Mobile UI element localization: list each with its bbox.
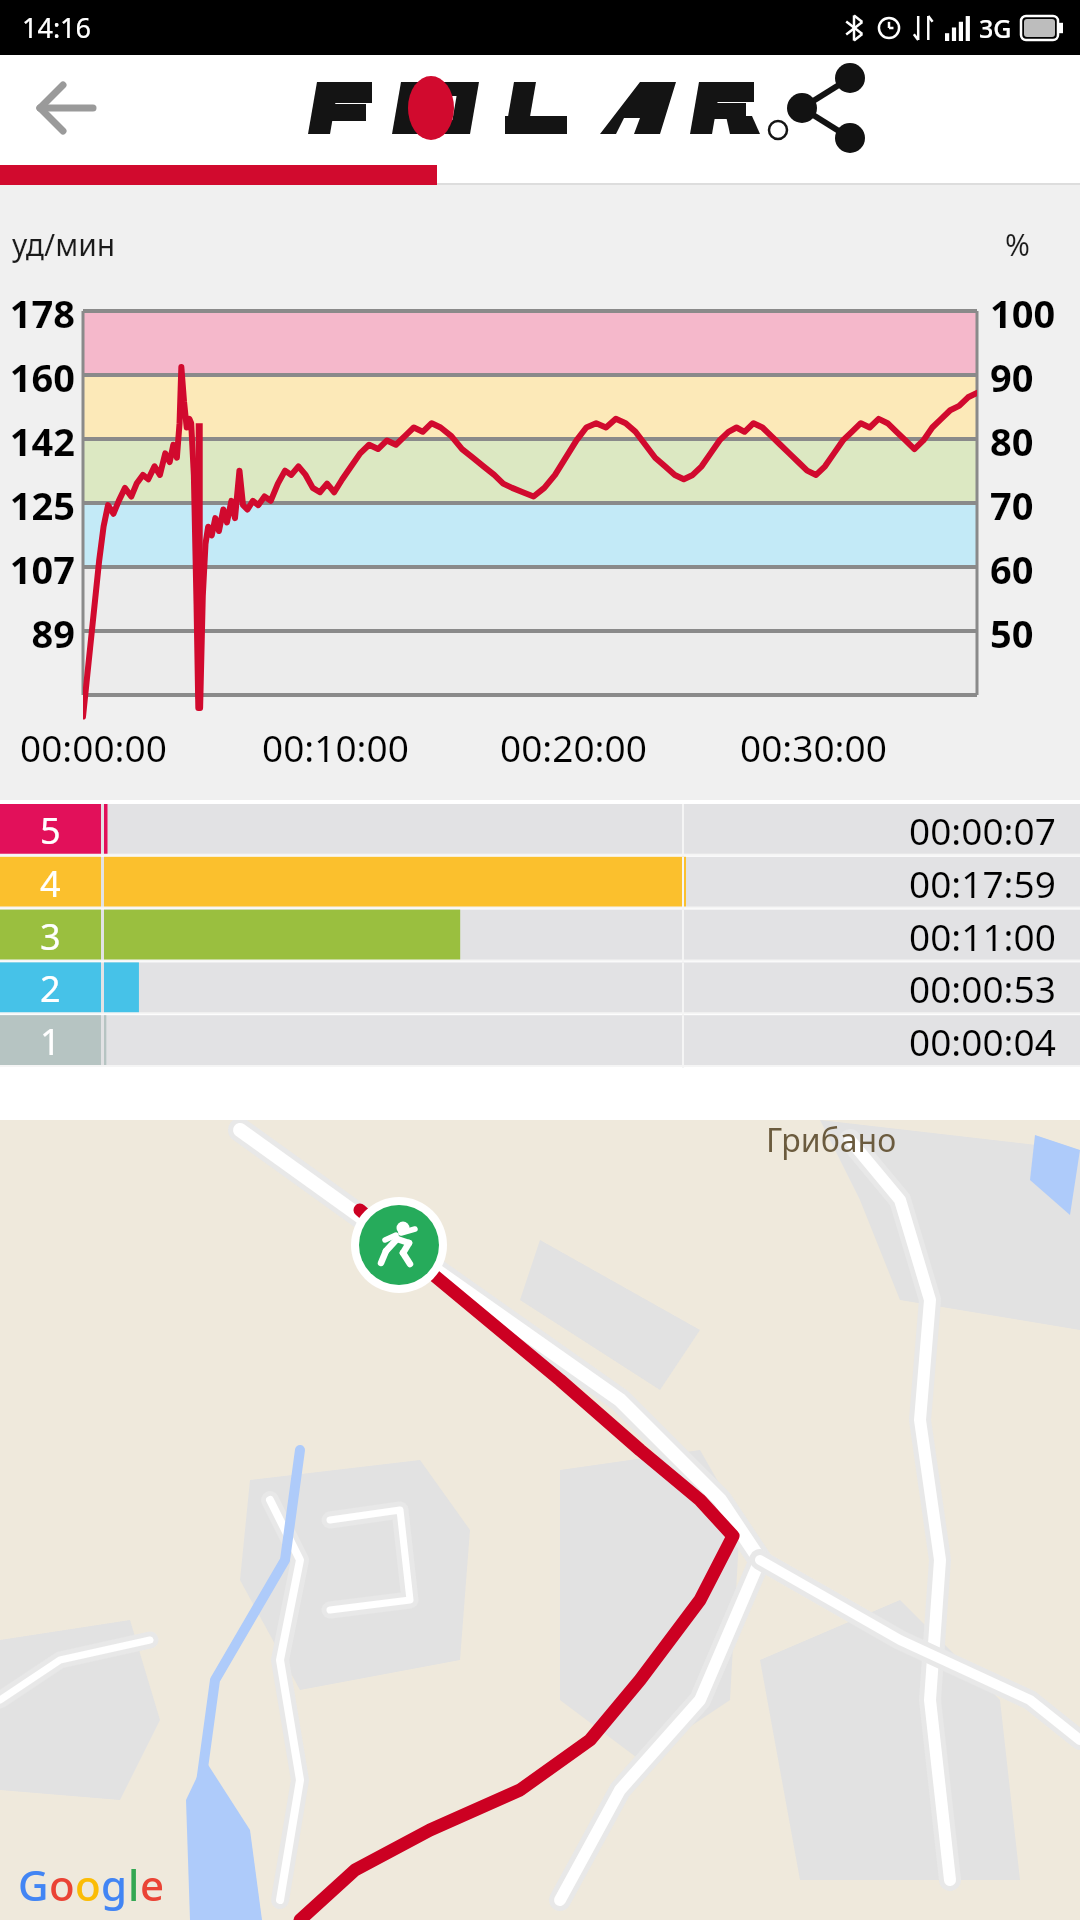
staticText: 00:10:00 [262, 722, 409, 772]
staticText: 5 [40, 806, 61, 855]
staticText: 125 [0, 479, 75, 531]
button[interactable]: 2 [0, 962, 1080, 1014]
staticText: 14:16 [22, 9, 92, 46]
staticText: g [101, 1856, 128, 1913]
staticText: 00:00:00 [20, 722, 167, 772]
staticText: 00:30:00 [740, 722, 887, 772]
staticText: 90 [990, 351, 1034, 403]
staticText: 100 [990, 287, 1056, 339]
staticText: 70 [990, 479, 1034, 531]
staticText: 1 [40, 1017, 61, 1066]
button[interactable]: Back [20, 66, 110, 150]
staticText: 178 [0, 287, 75, 339]
staticText: уд/мин [12, 224, 116, 265]
staticText: Грибано [766, 1118, 897, 1162]
staticText: 00:11:00 [909, 911, 1056, 961]
staticText: 3 [40, 912, 61, 961]
staticText: 00:00:04 [909, 1016, 1056, 1066]
staticText: 00:20:00 [500, 722, 647, 772]
staticText: 3G [979, 11, 1012, 45]
button[interactable]: 4 [0, 857, 1080, 909]
staticText: 60 [990, 543, 1034, 595]
staticText: o [49, 1856, 75, 1913]
staticText: 00:00:53 [909, 963, 1056, 1013]
staticText: o [75, 1856, 101, 1913]
button[interactable]: Share [780, 66, 876, 150]
button[interactable]: Route map [0, 1120, 1080, 1920]
staticText: e [140, 1856, 165, 1913]
staticText: G [18, 1856, 49, 1913]
staticText: 2 [40, 964, 61, 1013]
staticText: 160 [0, 351, 75, 403]
staticText: % [1005, 224, 1030, 265]
staticText: 107 [0, 543, 75, 595]
staticText: 00:17:59 [909, 858, 1056, 908]
staticText: 50 [990, 607, 1034, 659]
staticText: 89 [0, 607, 75, 659]
staticText: l [128, 1856, 140, 1913]
staticText: 80 [990, 415, 1034, 467]
staticText: 4 [40, 859, 61, 908]
button[interactable]: 1 [0, 1015, 1080, 1067]
button[interactable]: 3 [0, 910, 1080, 962]
staticText: 142 [0, 415, 75, 467]
staticText: 00:00:07 [909, 805, 1056, 855]
button[interactable]: 5 [0, 804, 1080, 856]
